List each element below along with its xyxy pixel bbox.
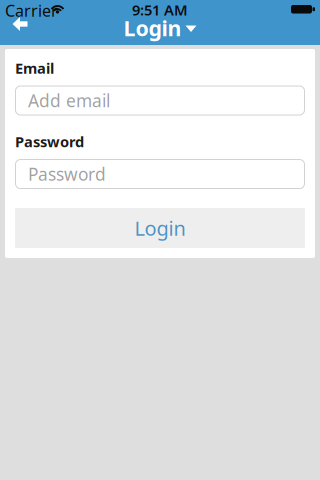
staticText: Carrier: [5, 0, 58, 21]
staticText: Add email: [28, 89, 110, 112]
button[interactable]: Add email: [15, 85, 305, 115]
staticText: Login: [123, 14, 181, 42]
button[interactable]: Login: [15, 208, 305, 248]
button[interactable]: Password: [15, 159, 305, 189]
staticText: Login: [134, 215, 185, 241]
staticText: Password: [15, 132, 84, 151]
staticText: 9:51 AM: [132, 0, 188, 19]
button[interactable]: Login menu: [123, 14, 196, 42]
button[interactable]: Back: [0, 0, 35, 36]
staticText: Email: [15, 58, 54, 78]
staticText: Password: [28, 162, 106, 185]
